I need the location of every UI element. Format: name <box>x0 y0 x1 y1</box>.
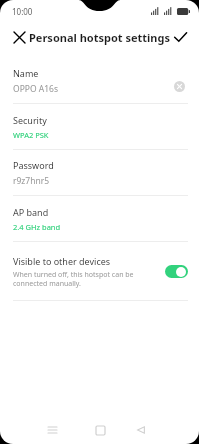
button[interactable]: Home <box>88 418 112 442</box>
staticText: r9z7hnr5 <box>13 175 50 187</box>
button[interactable]: Recent apps <box>40 418 64 442</box>
button[interactable]: Security <box>0 104 199 150</box>
staticText: WPA2 PSK <box>13 130 49 140</box>
button[interactable]: Back <box>129 418 153 442</box>
staticText: Visible to other devices <box>13 255 111 267</box>
staticText: Personal hotspot settings <box>29 30 170 45</box>
staticText: Name <box>13 67 39 79</box>
button[interactable]: Close <box>6 24 32 50</box>
staticText: OPPO A16s <box>13 83 58 95</box>
staticText: 2.4 GHz band <box>13 222 61 232</box>
button[interactable]: Visible to other devices <box>0 242 199 301</box>
staticText: AP band <box>13 206 49 218</box>
staticText: Password <box>13 159 54 171</box>
button[interactable]: Visible to other devices toggle <box>165 265 188 278</box>
staticText: When turned off, this hotspot can be con… <box>13 270 157 288</box>
button[interactable]: AP band <box>0 196 199 242</box>
button[interactable]: Clear name <box>170 77 188 95</box>
button[interactable]: Name <box>0 58 199 104</box>
staticText: Security <box>13 114 47 126</box>
button[interactable]: Confirm <box>167 24 193 50</box>
button[interactable]: Password <box>0 150 199 196</box>
staticText: 10:00 <box>12 6 33 17</box>
